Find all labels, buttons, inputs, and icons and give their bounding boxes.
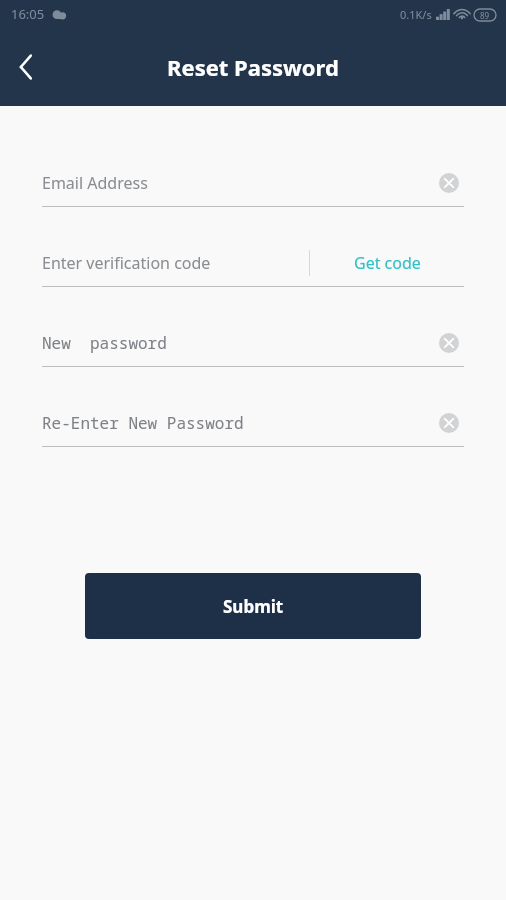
- button[interactable]: Back: [0, 41, 52, 93]
- button[interactable]: Get code: [310, 240, 464, 286]
- button[interactable]: Email Address: [0, 160, 506, 206]
- staticText: Re-Enter New Password: [42, 412, 434, 434]
- staticText: 0.1K/s: [400, 7, 432, 22]
- button[interactable]: New password: [0, 320, 506, 366]
- button[interactable]: Clear: [434, 168, 464, 198]
- staticText: New password: [42, 332, 434, 354]
- staticText: 16:05: [11, 5, 45, 23]
- button[interactable]: Submit: [85, 573, 421, 639]
- button[interactable]: Enter verification code: [42, 252, 309, 274]
- staticText: 89: [480, 10, 490, 21]
- staticText: Submit: [223, 595, 284, 618]
- button[interactable]: Clear: [434, 408, 464, 438]
- button[interactable]: Clear: [434, 328, 464, 358]
- staticText: Email Address: [42, 172, 434, 194]
- staticText: Get code: [354, 252, 421, 274]
- button[interactable]: Re-Enter New Password: [0, 400, 506, 446]
- staticText: Reset Password: [167, 52, 339, 82]
